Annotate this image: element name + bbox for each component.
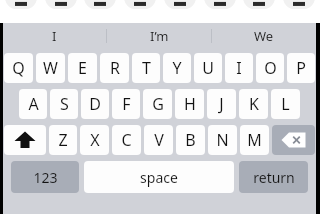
staticText: return	[253, 168, 295, 187]
button[interactable]: Format	[283, 0, 315, 9]
button[interactable]: We	[212, 23, 316, 49]
button[interactable]: Chart	[204, 0, 236, 9]
button[interactable]: N	[208, 125, 237, 155]
button[interactable]: P	[287, 53, 315, 83]
button[interactable]: I	[225, 53, 253, 83]
button[interactable]: D	[81, 89, 109, 119]
button[interactable]: Y	[163, 53, 191, 83]
staticText: S	[60, 93, 69, 115]
button[interactable]: C	[112, 125, 141, 155]
staticText: C	[121, 129, 132, 151]
button[interactable]: 123	[11, 161, 79, 193]
button[interactable]: Shift	[4, 125, 46, 155]
button[interactable]: Draw	[124, 0, 156, 9]
staticText: B	[185, 129, 196, 151]
button[interactable]: Back	[243, 0, 275, 9]
button[interactable]: E	[68, 53, 97, 83]
staticText: I	[236, 57, 242, 79]
staticText: V	[154, 129, 164, 151]
staticText: I	[52, 27, 57, 45]
button[interactable]: X	[80, 125, 109, 155]
staticText: L	[281, 93, 290, 115]
staticText: U	[202, 57, 214, 79]
staticText: R	[110, 57, 120, 79]
staticText: E	[78, 57, 87, 79]
button[interactable]: return	[239, 161, 308, 193]
button[interactable]: I’m	[107, 23, 211, 49]
button[interactable]: Align	[164, 0, 196, 9]
button[interactable]: Q	[4, 53, 33, 83]
button[interactable]: A	[19, 89, 47, 119]
staticText: K	[249, 93, 259, 115]
button[interactable]: J	[207, 89, 236, 119]
staticText: F	[122, 93, 131, 115]
staticText: N	[216, 129, 229, 151]
button[interactable]: O	[256, 53, 284, 83]
button[interactable]: I	[3, 23, 106, 49]
staticText: W	[43, 57, 58, 79]
staticText: X	[90, 129, 100, 151]
button[interactable]: Keyboard	[84, 0, 116, 9]
staticText: I’m	[150, 27, 169, 45]
staticText: O	[264, 57, 277, 79]
staticText: Q	[12, 57, 25, 79]
button[interactable]: Undo	[5, 0, 37, 9]
button[interactable]: M	[240, 125, 269, 155]
button[interactable]: G	[143, 89, 172, 119]
button[interactable]: Z	[49, 125, 77, 155]
button[interactable]: W	[36, 53, 65, 83]
button[interactable]: U	[194, 53, 222, 83]
staticText: Z	[58, 129, 68, 151]
staticText: H	[184, 93, 196, 115]
staticText: We	[254, 27, 274, 45]
staticText: T	[142, 57, 151, 79]
staticText: space	[140, 168, 178, 187]
staticText: J	[219, 93, 224, 115]
button[interactable]: T	[132, 53, 160, 83]
button[interactable]: Backspace	[272, 125, 315, 155]
button[interactable]: V	[144, 125, 173, 155]
button[interactable]: space	[84, 161, 234, 193]
staticText: G	[152, 93, 164, 115]
staticText: 123	[33, 168, 58, 187]
button[interactable]: B	[176, 125, 205, 155]
staticText: P	[296, 57, 306, 79]
button[interactable]: S	[50, 89, 78, 119]
button[interactable]: F	[112, 89, 140, 119]
staticText: Y	[172, 57, 182, 79]
button[interactable]: L	[271, 89, 300, 119]
button[interactable]: H	[175, 89, 204, 119]
staticText: D	[89, 93, 101, 115]
button[interactable]: R	[100, 53, 129, 83]
staticText: M	[247, 129, 262, 151]
button[interactable]: Text	[45, 0, 77, 9]
staticText: A	[28, 93, 39, 115]
button[interactable]: K	[239, 89, 268, 119]
